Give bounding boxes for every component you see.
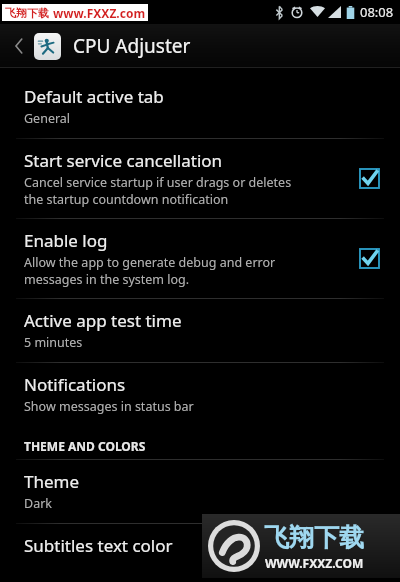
- staticText: Cancel service startup if user drags or …: [24, 174, 292, 207]
- button[interactable]: Toggle setting: [354, 243, 384, 273]
- staticText: CPU Adjuster: [73, 33, 191, 59]
- staticText: Theme: [24, 470, 80, 493]
- staticText: Dark: [24, 495, 52, 512]
- staticText: Show messages in status bar: [24, 398, 194, 415]
- staticText: Default active tab: [24, 85, 164, 108]
- staticText: 5 minutes: [24, 334, 83, 351]
- button[interactable]: Theme: [0, 460, 400, 523]
- staticText: Subtitles text color: [24, 534, 173, 557]
- button[interactable]: Toggle setting: [354, 163, 384, 193]
- staticText: THEME AND COLORS: [24, 438, 146, 454]
- button[interactable]: Navigate up: [6, 33, 32, 59]
- staticText: WWW.FXXZ.COM: [265, 555, 364, 571]
- staticText: 飞翔下载: [264, 522, 364, 553]
- button[interactable]: Active app test time: [0, 299, 400, 362]
- staticText: 飞翔下载: [5, 6, 49, 20]
- staticText: Notifications: [24, 373, 126, 396]
- staticText: Allow the app to generate debug and erro…: [24, 254, 276, 287]
- staticText: Active app test time: [24, 309, 182, 332]
- staticText: 08:08: [360, 3, 394, 21]
- button[interactable]: Enable log: [0, 219, 400, 298]
- staticText: Start service cancellation: [24, 149, 223, 172]
- button[interactable]: Default active tab: [0, 75, 400, 138]
- staticText: General: [24, 110, 71, 127]
- staticText: www.FXXZ.com: [53, 5, 146, 21]
- staticText: Enable log: [24, 229, 108, 252]
- button[interactable]: Start service cancellation: [0, 139, 400, 218]
- button[interactable]: Notifications: [0, 363, 400, 426]
- button[interactable]: Subtitles text color: [0, 524, 400, 568]
